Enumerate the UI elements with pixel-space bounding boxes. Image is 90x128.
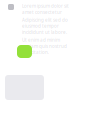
staticText: Ut enim ad minim veniam quis nostrud exe… [22,37,67,55]
staticText: Lorem ipsum dolor sit amet consectetur [22,3,69,15]
staticText: Adipiscing elit sed do eiusmod tempor in… [22,17,68,35]
